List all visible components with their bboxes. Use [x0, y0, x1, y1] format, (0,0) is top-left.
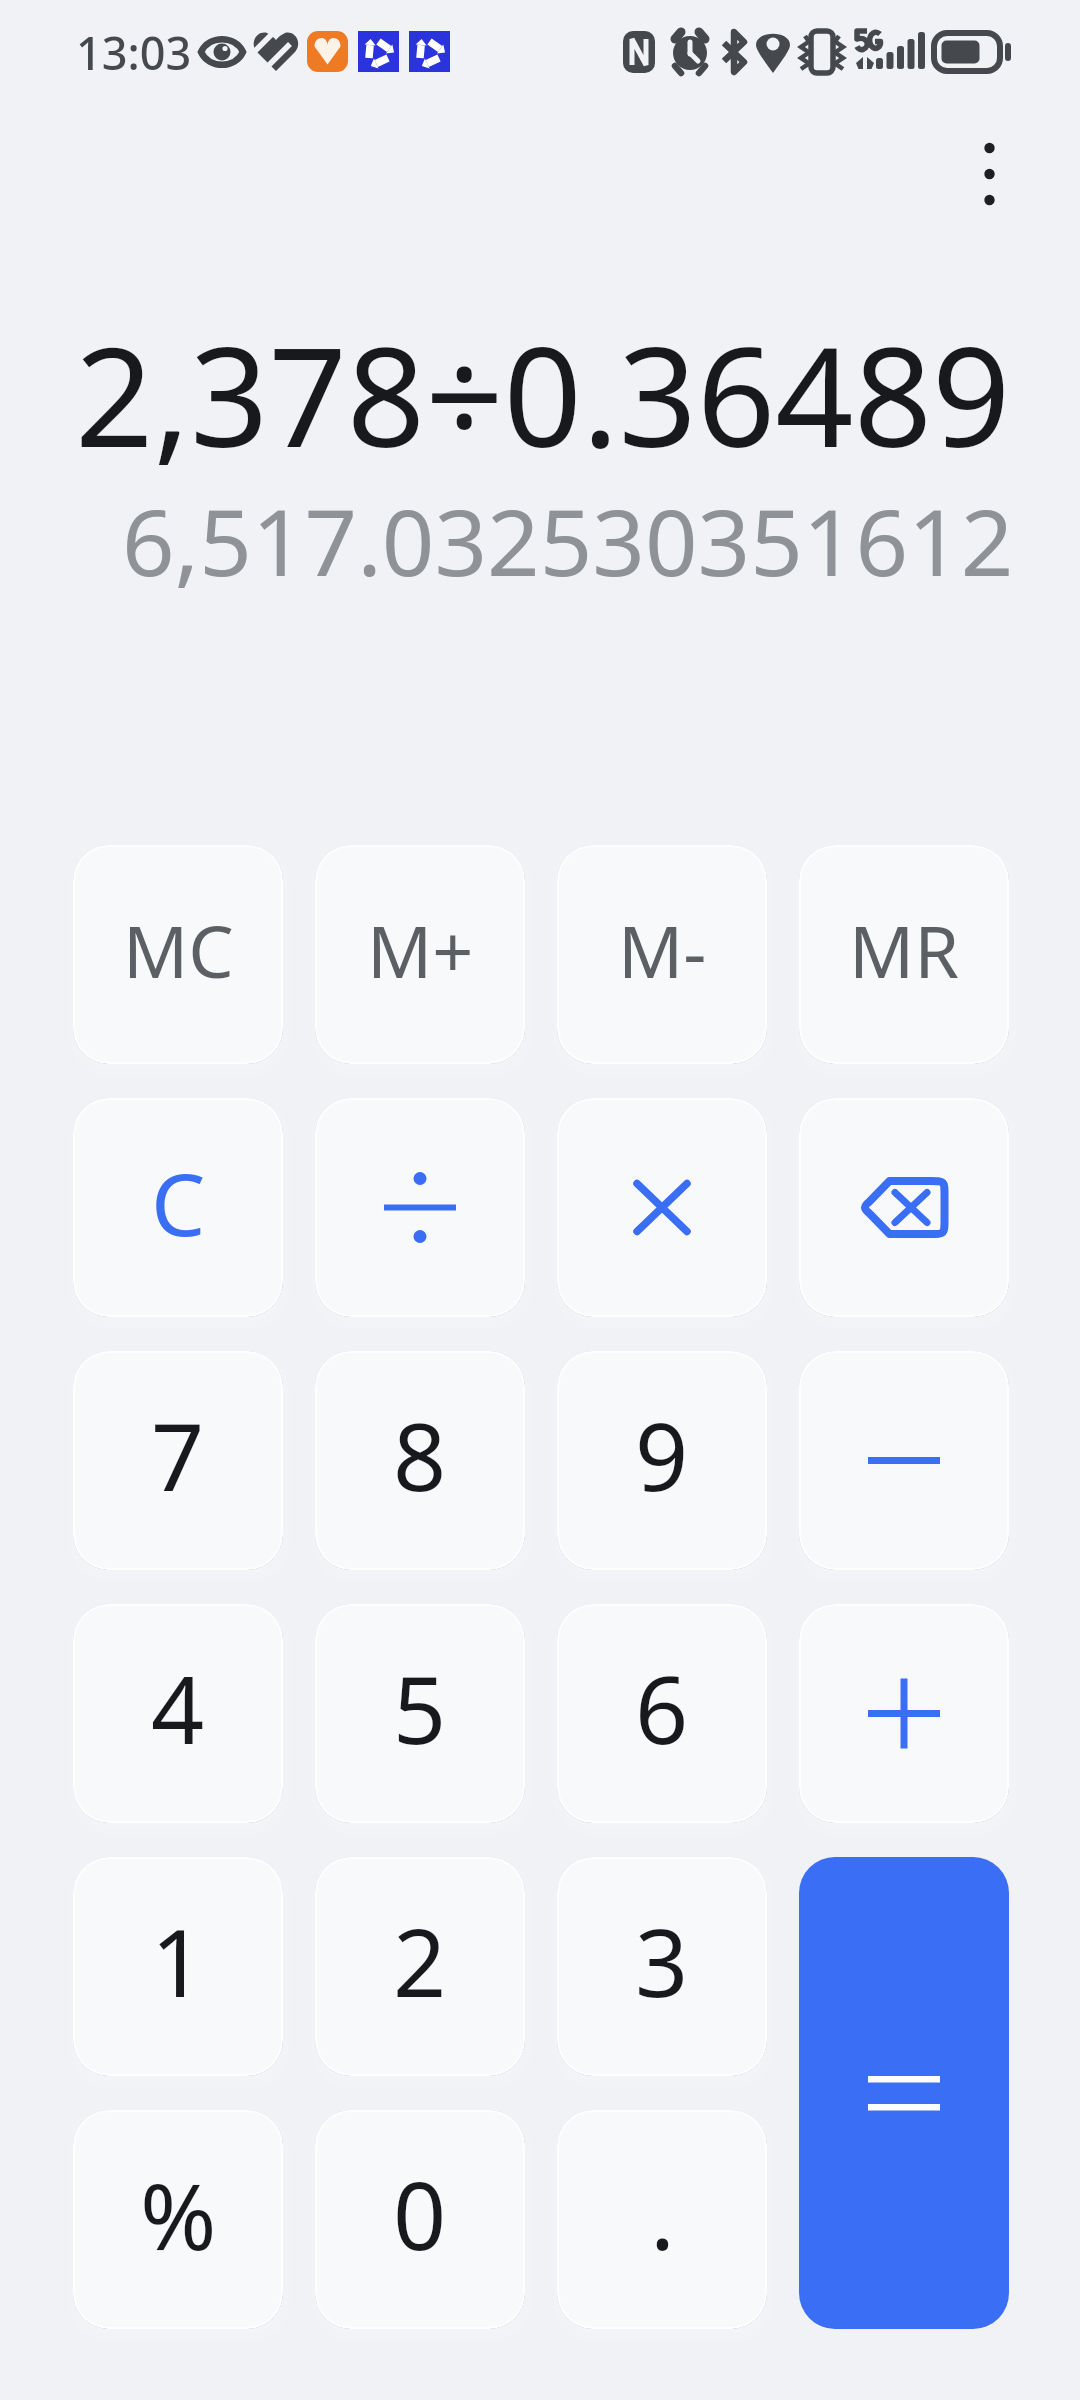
staticText: 9 — [635, 1392, 689, 1519]
button[interactable]: 2 — [315, 1857, 525, 2076]
button[interactable]: 6 — [557, 1604, 767, 1823]
staticText: M+ — [367, 901, 474, 999]
staticText: 2 — [393, 1898, 447, 2025]
button[interactable]: Backspace — [799, 1098, 1009, 1317]
staticText: C — [151, 1144, 206, 1261]
button[interactable]: 7 — [73, 1351, 283, 1570]
button[interactable]: Equals — [799, 1857, 1009, 2329]
staticText: . — [650, 2151, 675, 2278]
button[interactable]: MR — [799, 845, 1009, 1064]
button[interactable]: Plus — [799, 1604, 1009, 1823]
staticText: 8 — [393, 1392, 447, 1519]
staticText: 6 — [635, 1645, 689, 1772]
button[interactable]: 0 — [315, 2110, 525, 2329]
button[interactable]: More options — [930, 114, 1048, 226]
button[interactable]: % — [73, 2110, 283, 2329]
staticText: 2,378÷0.36489 — [75, 301, 1011, 488]
button[interactable]: 4 — [73, 1604, 283, 1823]
staticText: % — [140, 2152, 217, 2277]
staticText: 1 — [151, 1898, 205, 2025]
staticText: 13:03 — [76, 22, 192, 83]
staticText: 0 — [393, 2151, 447, 2278]
staticText: 5 — [393, 1645, 447, 1772]
button[interactable]: C — [73, 1098, 283, 1317]
button[interactable]: . — [557, 2110, 767, 2329]
button[interactable]: M- — [557, 845, 767, 1064]
staticText: 4 — [151, 1645, 205, 1772]
button[interactable]: Multiply — [557, 1098, 767, 1317]
button[interactable]: Divide — [315, 1098, 525, 1317]
button[interactable]: 5 — [315, 1604, 525, 1823]
button[interactable]: M+ — [315, 845, 525, 1064]
staticText: M- — [618, 901, 707, 999]
staticText: 7 — [151, 1392, 205, 1519]
button[interactable]: 9 — [557, 1351, 767, 1570]
staticText: 3 — [635, 1898, 689, 2025]
staticText: MR — [849, 901, 960, 999]
button[interactable]: 3 — [557, 1857, 767, 2076]
staticText: 6,517.032530351612 — [122, 478, 1014, 603]
button[interactable]: 1 — [73, 1857, 283, 2076]
button[interactable]: Minus — [799, 1351, 1009, 1570]
staticText: MC — [123, 901, 234, 999]
button[interactable]: 8 — [315, 1351, 525, 1570]
button[interactable]: MC — [73, 845, 283, 1064]
